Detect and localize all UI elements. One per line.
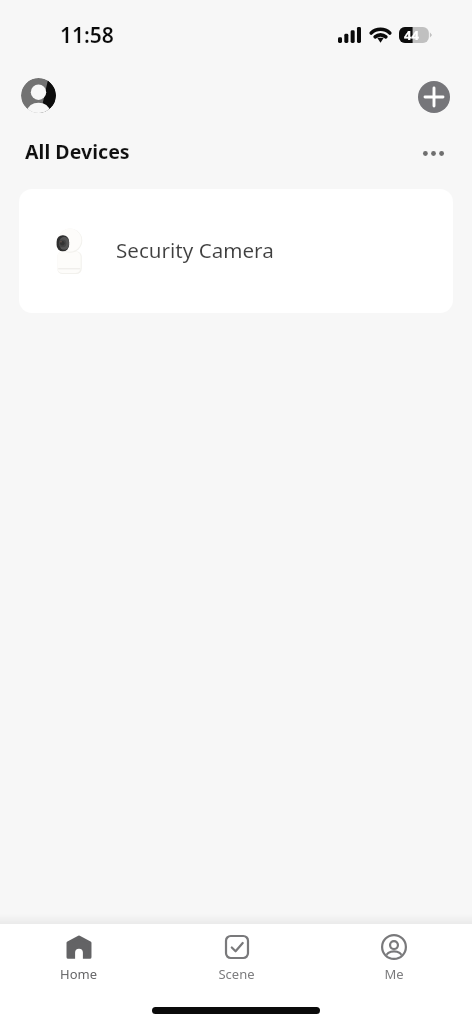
staticText: Security Camera: [116, 236, 274, 264]
staticText: 11:58: [60, 21, 114, 50]
button[interactable]: Profile: [21, 78, 56, 113]
staticText: 44: [404, 26, 419, 42]
button[interactable]: More options: [415, 135, 451, 171]
staticText: All Devices: [25, 138, 130, 165]
button[interactable]: Add device: [418, 81, 450, 113]
button[interactable]: Me: [315, 924, 472, 1000]
staticText: Home: [60, 965, 97, 983]
staticText: Scene: [218, 965, 255, 983]
staticText: Me: [384, 965, 404, 983]
button[interactable]: Security Camera: [19, 189, 453, 313]
button[interactable]: Scene: [158, 924, 315, 1000]
button[interactable]: Home: [0, 924, 157, 1000]
